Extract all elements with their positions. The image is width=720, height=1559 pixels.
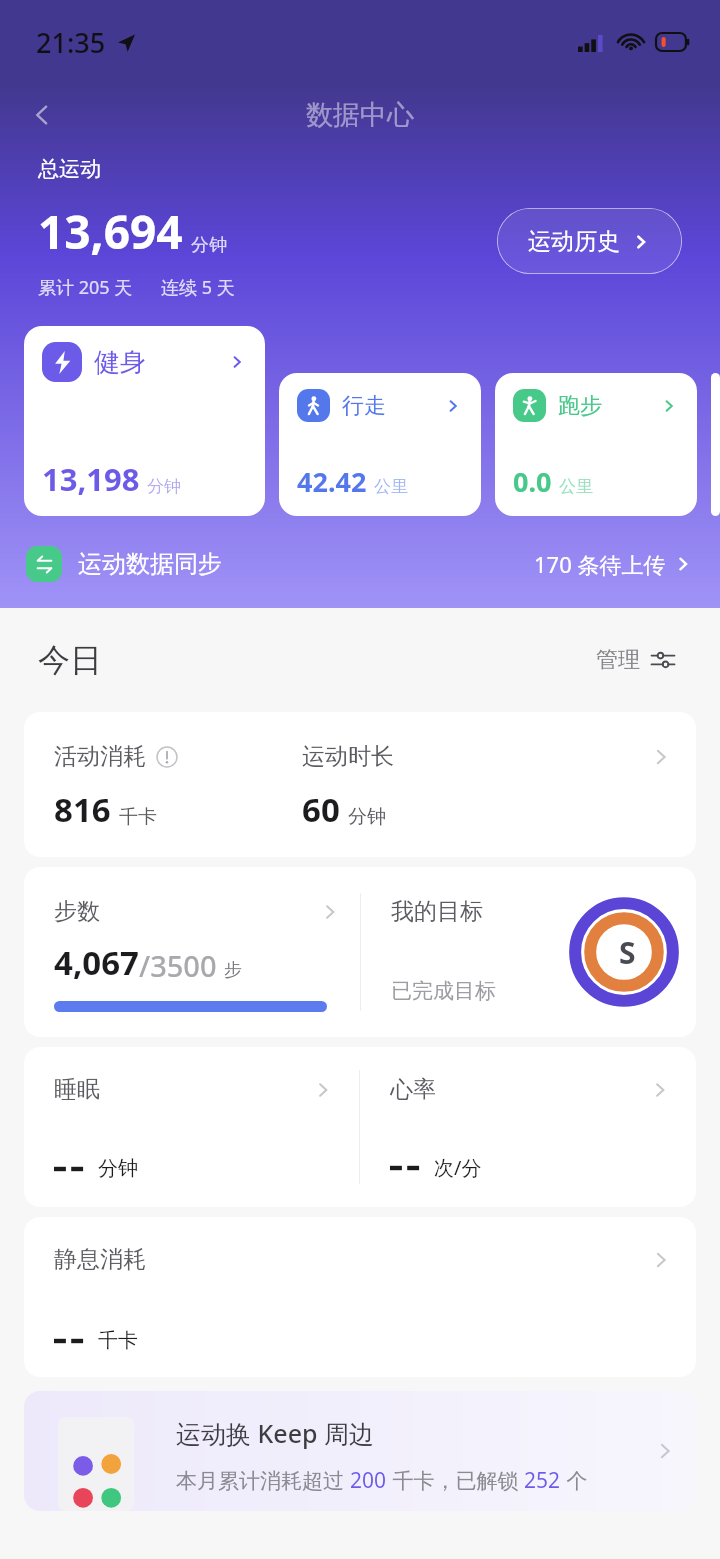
button[interactable]: 运动历史 <box>497 208 682 274</box>
staticText: 13,694 <box>38 200 183 263</box>
staticText: 运动换 Keep 周边 <box>176 1416 375 1450</box>
staticText: 千卡 <box>119 805 157 829</box>
staticText: 4,067 <box>54 940 139 985</box>
button[interactable]: 静息消耗 <box>24 1217 696 1377</box>
staticText: 42.42 <box>297 463 367 500</box>
staticText: 连续 5 天 <box>161 275 235 300</box>
staticText: 本月累计消耗超过 <box>176 1466 350 1495</box>
staticText: 步数 <box>54 897 100 926</box>
staticText: 累计 205 天 <box>38 275 133 300</box>
button[interactable]: 运动数据同步 <box>0 538 720 590</box>
staticText: 千卡 <box>98 1328 138 1353</box>
staticText: 行走 <box>342 392 386 420</box>
staticText: 13,198 <box>42 458 140 500</box>
staticText: 健身 <box>94 346 146 379</box>
staticText: /3500 <box>139 946 217 985</box>
staticText: 200 <box>350 1466 387 1495</box>
button[interactable]: Back <box>18 91 66 139</box>
staticText: 步 <box>224 959 242 982</box>
staticText: S <box>619 932 636 973</box>
staticText: 公里 <box>559 476 593 497</box>
staticText: 60 <box>302 787 340 832</box>
staticText: 千卡，已解锁 <box>387 1466 524 1495</box>
staticText: 跑步 <box>558 392 602 420</box>
button[interactable]: 健身 <box>24 326 265 516</box>
staticText: 我的目标 <box>391 897 483 926</box>
staticText: 今日 <box>38 640 102 680</box>
button[interactable]: 骑行 <box>711 373 720 516</box>
button[interactable]: 步数 <box>24 867 360 1037</box>
staticText: 心率 <box>390 1075 436 1104</box>
button[interactable]: 心率 <box>360 1047 696 1207</box>
button[interactable]: 行走 <box>279 373 481 516</box>
button[interactable]: 我的目标 <box>361 867 696 1037</box>
button[interactable]: 睡眠 <box>24 1047 359 1207</box>
staticText: 分钟 <box>191 234 227 257</box>
staticText: 运动时长 <box>302 742 394 771</box>
staticText: 分钟 <box>98 1156 138 1181</box>
staticText: 分钟 <box>348 805 386 829</box>
staticText: 0.0 <box>513 463 552 500</box>
staticText: 分钟 <box>147 476 181 497</box>
staticText: 公里 <box>374 476 408 497</box>
staticText: 总运动 <box>38 156 101 182</box>
staticText: 静息消耗 <box>54 1245 146 1274</box>
staticText: 管理 <box>596 646 640 674</box>
staticText: 21:35 <box>36 24 106 61</box>
staticText: 次/分 <box>434 1154 482 1181</box>
staticText: 816 <box>54 787 111 832</box>
button[interactable]: 运动换 Keep 周边 <box>24 1391 696 1511</box>
staticText: 运动数据同步 <box>78 549 222 579</box>
staticText: 个 <box>561 1466 588 1495</box>
staticText: 活动消耗 <box>54 742 146 771</box>
staticText: 170 条待上传 <box>534 549 666 579</box>
staticText: 运动历史 <box>528 227 620 256</box>
staticText: 数据中心 <box>306 98 414 132</box>
button[interactable]: 管理 <box>590 640 682 680</box>
staticText: 252 <box>524 1466 561 1495</box>
button[interactable]: 活动消耗 <box>24 712 696 857</box>
button[interactable]: 跑步 <box>495 373 697 516</box>
staticText: 已完成目标 <box>391 978 496 1004</box>
staticText: 睡眠 <box>54 1075 100 1104</box>
